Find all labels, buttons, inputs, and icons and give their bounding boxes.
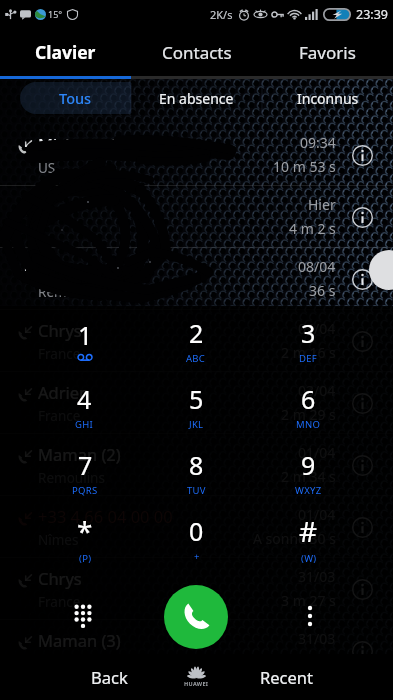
staticText: Chrys <box>38 567 82 589</box>
button[interactable]: Maman (2) <box>0 434 393 495</box>
staticText: US... <box>38 159 67 177</box>
staticText: 2 m 29 s <box>281 405 336 424</box>
staticText: 0 <box>189 514 204 548</box>
staticText: 3 m 27 s <box>281 591 336 610</box>
button[interactable]: Hide keypad <box>62 595 104 637</box>
button[interactable]: Call details <box>346 511 378 543</box>
staticText: 5 <box>189 382 204 416</box>
staticText: 2 m 34 s <box>281 467 336 486</box>
staticText: 2K/s <box>210 7 233 22</box>
staticText: Clavier <box>35 40 96 64</box>
button[interactable]: Call details <box>346 635 378 667</box>
staticText: En absence <box>159 89 234 108</box>
staticText: Remoulins <box>38 469 105 487</box>
staticText: PQRS <box>72 484 98 497</box>
button[interactable]: +33 4 66 04 00 00 <box>0 496 393 557</box>
button[interactable]: 1 <box>29 308 140 374</box>
staticText: Adrien <box>38 381 90 403</box>
staticText: 01/04 <box>298 505 336 524</box>
button[interactable]: 5 <box>140 374 252 440</box>
button[interactable]: Home <box>176 660 216 692</box>
button[interactable]: 6 <box>252 374 364 440</box>
staticText: MNO <box>296 418 321 431</box>
button[interactable]: Call details <box>346 139 378 171</box>
button[interactable]: Michel + D... <box>0 124 393 185</box>
button[interactable]: Call details <box>346 263 378 295</box>
button[interactable]: # <box>252 506 364 572</box>
staticText: 03/04 <box>298 381 336 400</box>
staticText: Back <box>91 666 128 688</box>
staticText: Michel + D... <box>38 133 136 155</box>
button[interactable]: More options <box>289 595 331 637</box>
staticText: 2 <box>189 316 204 350</box>
button[interactable]: Call details <box>346 387 378 419</box>
staticText: Chrys <box>38 319 82 341</box>
staticText: 10 m 53 s <box>273 157 336 176</box>
button[interactable]: Adrien <box>0 372 393 433</box>
staticText: Remou... <box>38 283 94 301</box>
staticText: 4 m 2 s <box>289 219 336 238</box>
staticText: (W) <box>301 552 317 565</box>
button[interactable]: Hier <box>0 186 393 247</box>
staticText: 6 <box>301 382 316 416</box>
staticText: France <box>38 345 81 363</box>
staticText: Contacts <box>162 41 232 64</box>
staticText: * <box>77 512 93 550</box>
button[interactable]: 8 <box>140 440 252 506</box>
staticText: GHI <box>75 418 94 431</box>
staticText: France <box>38 407 81 425</box>
button[interactable]: Remou... <box>0 248 393 309</box>
staticText: Tous <box>59 88 92 108</box>
staticText: TUV <box>187 484 206 497</box>
staticText: Maman (2) <box>38 443 121 465</box>
staticText: Remoulins <box>38 655 105 673</box>
button[interactable]: Call details <box>346 325 378 357</box>
staticText: + <box>194 550 200 563</box>
staticText: WXYZ <box>295 484 322 497</box>
staticText: ABC <box>186 352 206 365</box>
button[interactable]: Contacts <box>131 28 262 76</box>
staticText: +33 4 66 04 00 00 <box>38 505 173 527</box>
staticText: Recent <box>260 666 313 688</box>
staticText: 3 <box>301 316 316 350</box>
staticText: A sonné 30 s <box>253 529 336 548</box>
button[interactable]: * <box>29 506 140 572</box>
button[interactable]: Clavier <box>0 28 131 76</box>
staticText: 36 s <box>309 281 336 300</box>
staticText: 31/03 <box>298 629 336 648</box>
button[interactable]: Maman (3) <box>0 620 393 681</box>
staticText: # <box>299 512 318 550</box>
staticText: 09:34 <box>300 133 336 152</box>
button[interactable]: 7 <box>29 440 140 506</box>
staticText: 05/04 <box>298 319 336 338</box>
staticText: Maman (3) <box>38 629 121 651</box>
staticText: 08/04 <box>298 257 336 276</box>
staticText: Hier <box>308 195 336 214</box>
button[interactable]: Call <box>164 585 228 649</box>
button[interactable]: Chrys <box>0 310 393 371</box>
staticText: Favoris <box>299 41 356 64</box>
staticText: 9 <box>301 448 316 482</box>
button[interactable]: En absence <box>131 82 262 114</box>
staticText: DEF <box>299 352 318 365</box>
button[interactable]: 2 <box>140 308 252 374</box>
staticText: 31/03 <box>298 567 336 586</box>
button[interactable]: 4 <box>29 374 140 440</box>
button[interactable]: Call details <box>346 449 378 481</box>
staticText: 2 m 16 s <box>281 343 336 362</box>
button[interactable]: Inconnus <box>262 82 393 114</box>
button[interactable]: 3 <box>252 308 364 374</box>
button[interactable]: Call details <box>346 573 378 605</box>
button[interactable]: Tous <box>20 82 131 114</box>
staticText: Inconnus <box>297 89 359 108</box>
button[interactable]: Call details <box>346 201 378 233</box>
button[interactable]: Recent <box>250 662 322 692</box>
staticText: 4 <box>77 382 92 416</box>
button[interactable]: 0 <box>140 506 252 572</box>
button[interactable]: Favoris <box>262 28 393 76</box>
button[interactable]: Chrys <box>0 558 393 619</box>
button[interactable]: Back <box>78 662 140 692</box>
button[interactable]: 9 <box>252 440 364 506</box>
staticText: (P) <box>79 552 92 565</box>
